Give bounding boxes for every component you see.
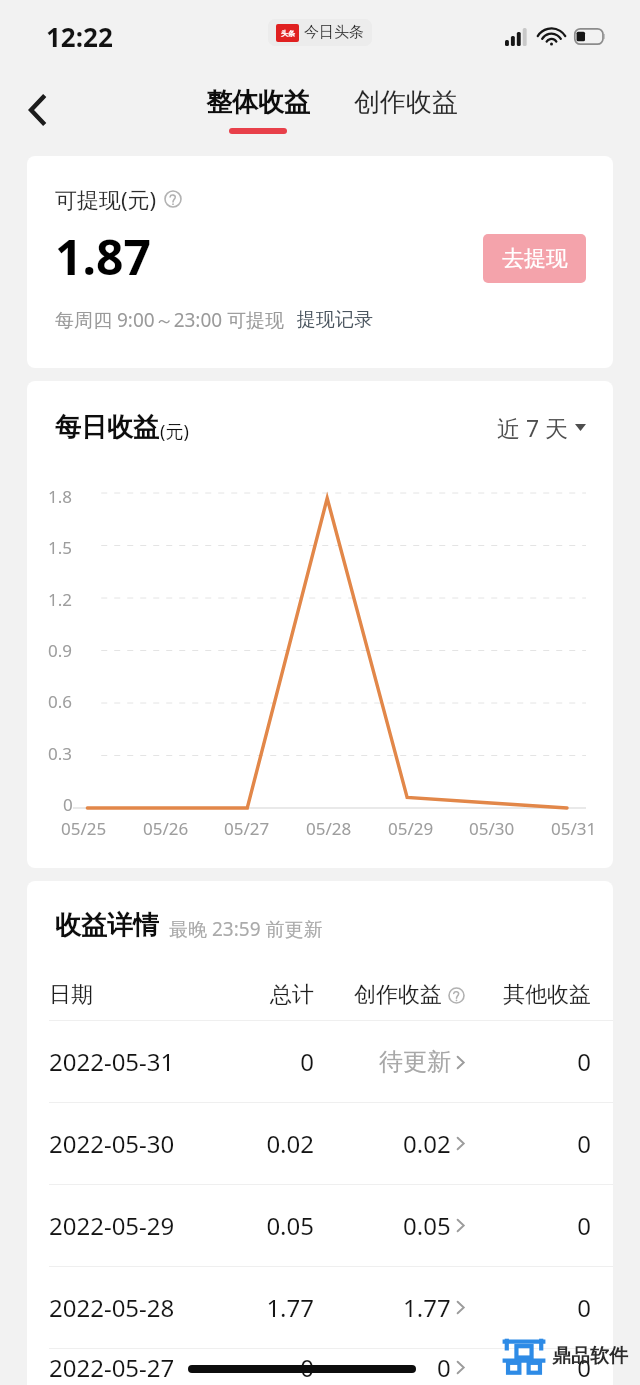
staticText: 日期 <box>49 981 206 1009</box>
staticText: 0 <box>206 1351 314 1384</box>
staticText: 0 <box>465 1291 591 1324</box>
staticText: 提现记录 <box>297 308 373 332</box>
staticText: 2022-05-31 <box>49 1045 206 1078</box>
staticText: 05/27 <box>224 817 270 840</box>
staticText: 待更新 <box>379 1047 451 1077</box>
button[interactable]: 整体收益 <box>202 86 314 134</box>
staticText: 0.9 <box>48 639 73 662</box>
staticText: 创作收益 <box>354 86 458 119</box>
staticText: 12:22 <box>46 19 113 54</box>
staticText: (元) <box>160 419 189 444</box>
staticText: 创作收益 <box>354 981 442 1009</box>
staticText: 0 <box>465 1209 591 1242</box>
staticText: 头条 <box>281 29 295 38</box>
staticText: 2022-05-29 <box>49 1209 206 1242</box>
staticText: 每周四 9:00～23:00 可提现 <box>55 307 285 333</box>
staticText: 2022-05-30 <box>49 1127 206 1160</box>
staticText: 0.05 <box>206 1209 314 1242</box>
button[interactable]: Back <box>12 85 62 135</box>
staticText: 0.3 <box>48 742 73 765</box>
staticText: 0.05 <box>403 1209 451 1242</box>
staticText: 0 <box>465 1127 591 1160</box>
staticText: 近 7 天 <box>497 412 569 443</box>
staticText: 0.02 <box>403 1127 451 1160</box>
button[interactable]: 近 7 天 <box>497 412 586 443</box>
staticText: 1.77 <box>403 1291 451 1324</box>
staticText: 最晚 23:59 前更新 <box>169 916 323 942</box>
staticText: 每日收益 <box>55 411 159 444</box>
staticText: 1.5 <box>48 536 73 559</box>
staticText: 05/30 <box>469 817 515 840</box>
button[interactable]: 2022-05-31 <box>27 1021 613 1102</box>
staticText: 其他收益 <box>465 981 591 1009</box>
staticText: 去提现 <box>502 245 568 273</box>
staticText: 收益详情 <box>55 909 159 942</box>
staticText: 1.2 <box>48 588 73 611</box>
staticText: 0.02 <box>206 1127 314 1160</box>
staticText: 0 <box>437 1351 451 1384</box>
staticText: 05/26 <box>143 817 189 840</box>
staticText: 0 <box>465 1351 591 1384</box>
staticText: 可提现(元) <box>55 184 157 214</box>
button[interactable]: 创作收益 <box>350 94 462 127</box>
staticText: 0 <box>206 1045 314 1078</box>
staticText: 1.8 <box>48 485 73 508</box>
button[interactable]: 2022-05-28 <box>27 1267 613 1348</box>
staticText: 今日头条 <box>304 23 364 42</box>
staticText: 05/28 <box>306 817 352 840</box>
staticText: 0 <box>63 793 73 816</box>
staticText: 1.87 <box>55 224 151 289</box>
button[interactable]: 2022-05-27 <box>27 1349 613 1385</box>
staticText: 05/29 <box>388 817 434 840</box>
staticText: 总计 <box>206 981 314 1009</box>
staticText: 2022-05-28 <box>49 1291 206 1324</box>
staticText: 鼎品软件 <box>552 1344 628 1368</box>
staticText: 整体收益 <box>206 86 310 119</box>
staticText: 05/25 <box>61 817 107 840</box>
staticText: 1.77 <box>206 1291 314 1324</box>
button[interactable]: 2022-05-30 <box>27 1103 613 1184</box>
staticText: 2022-05-27 <box>49 1351 206 1384</box>
button[interactable]: 提现记录 <box>297 308 373 332</box>
button[interactable]: 去提现 <box>483 234 586 283</box>
button[interactable]: 2022-05-29 <box>27 1185 613 1266</box>
staticText: 0 <box>465 1045 591 1078</box>
staticText: 0.6 <box>48 690 73 713</box>
staticText: 05/31 <box>551 817 597 840</box>
